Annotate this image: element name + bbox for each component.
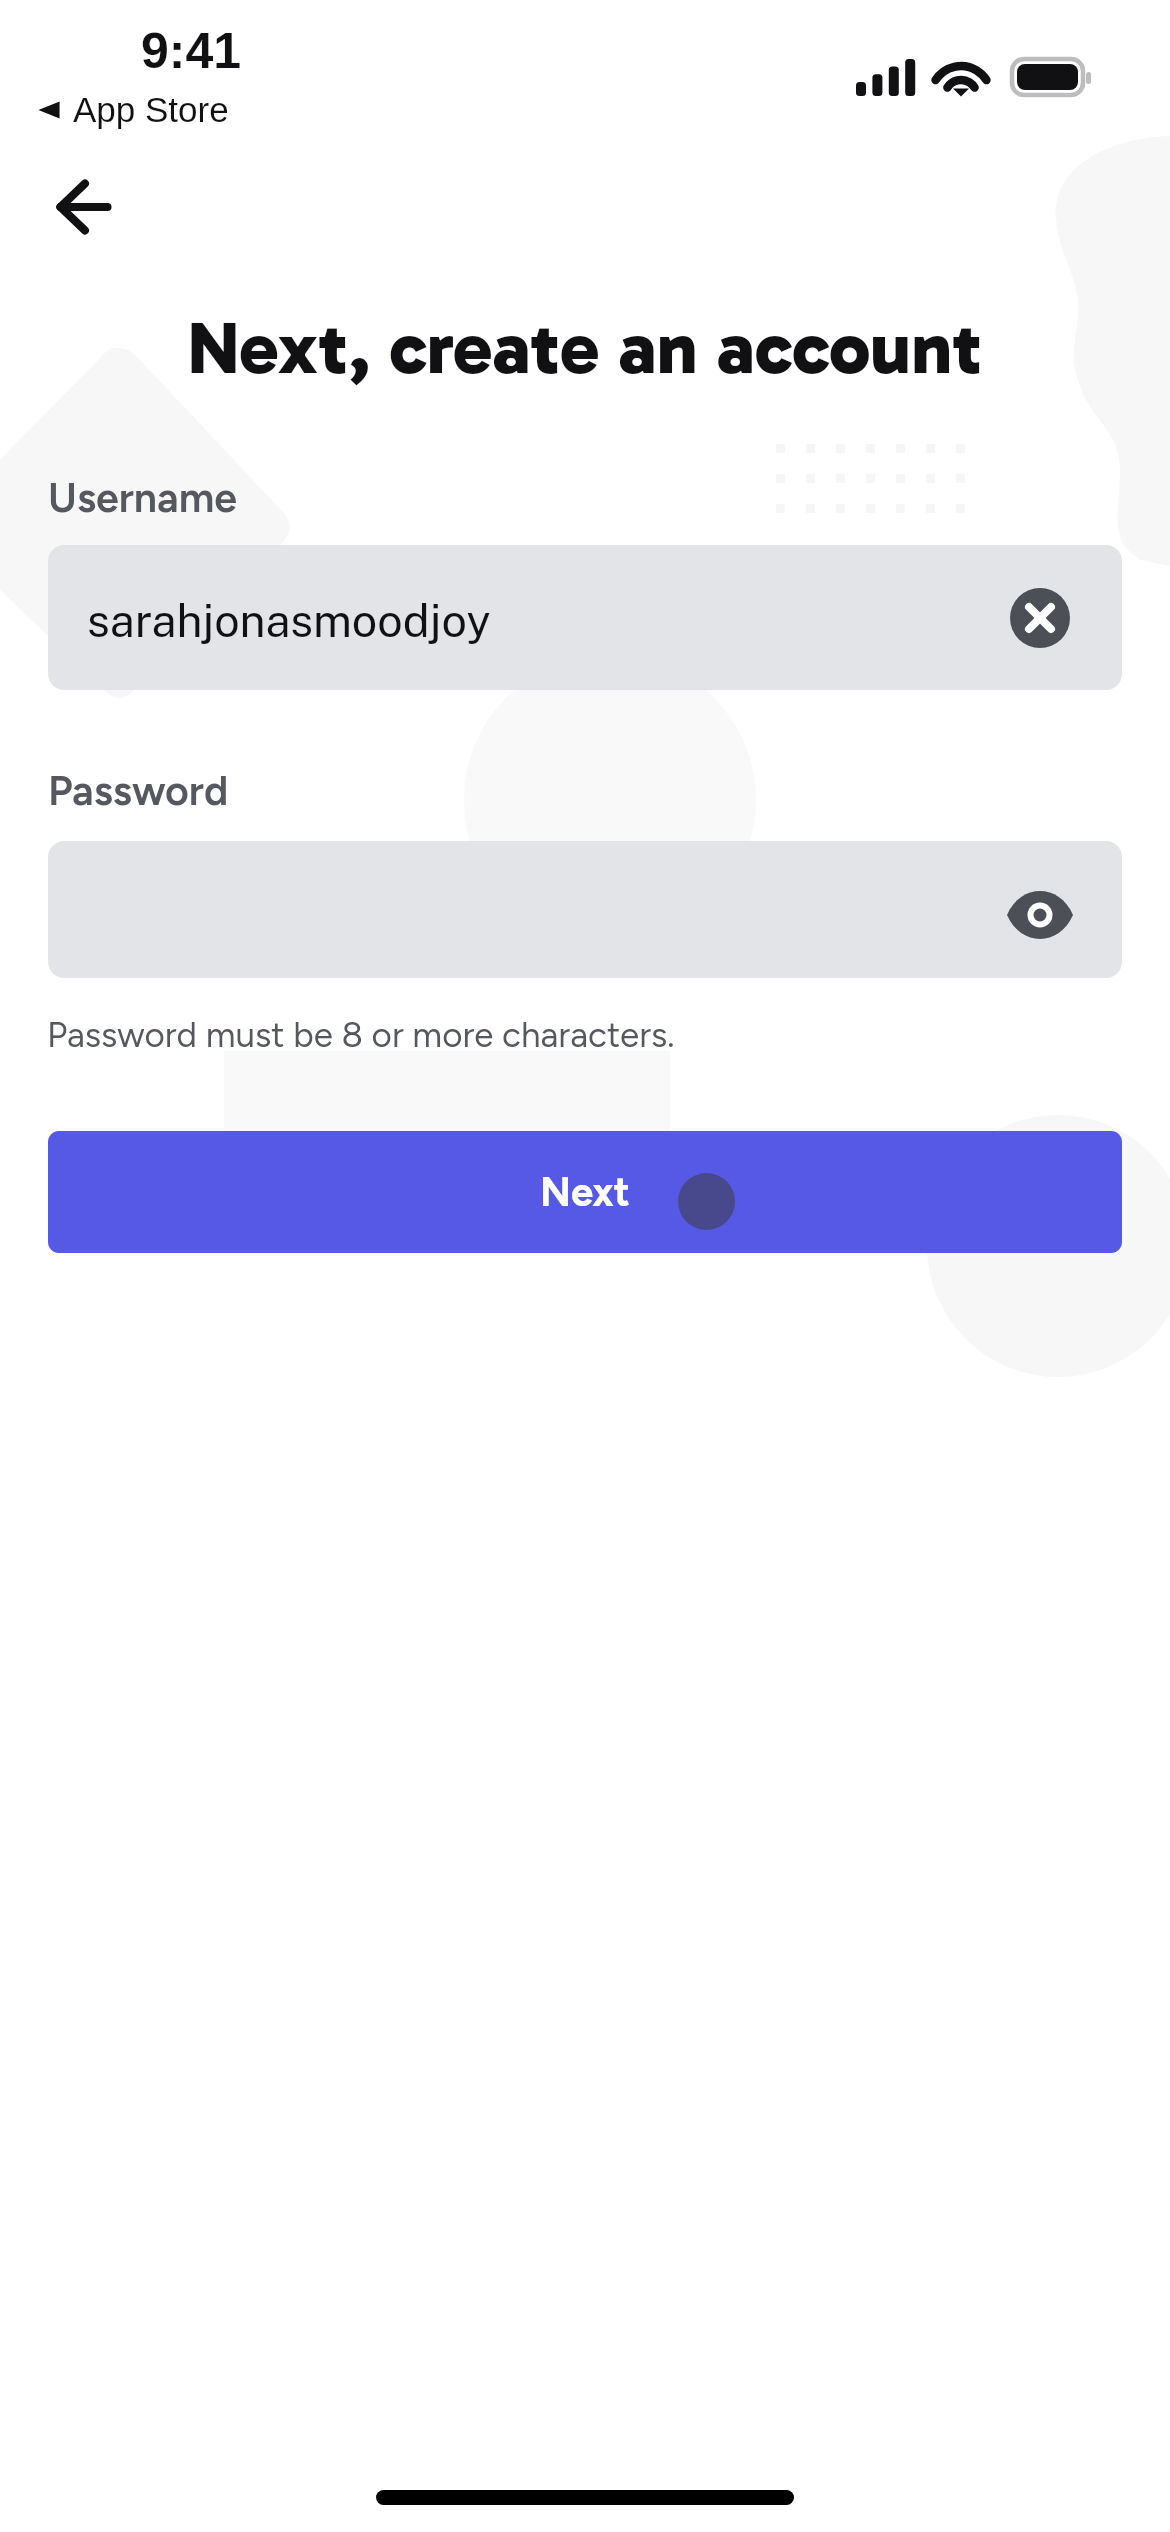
button[interactable]: sarahjonasmoodjoy [48,545,1122,690]
button[interactable]: App Store [36,90,231,129]
button[interactable]: Show password [992,877,1080,943]
staticText: Password [48,766,229,815]
staticText: Password must be 8 or more characters. [47,1014,675,1056]
button[interactable]: Clear text [1009,587,1071,649]
button[interactable]: Show password [48,841,1122,978]
button[interactable]: Next [48,1131,1122,1253]
staticText: Next [540,1168,630,1216]
staticText: Username [48,473,237,522]
staticText: App Store [73,90,229,129]
button[interactable]: Back [30,156,135,261]
staticText: 9:41 [141,23,242,79]
staticText: sarahjonasmoodjoy [87,594,491,647]
staticText: Next, create an account [0,303,1170,392]
